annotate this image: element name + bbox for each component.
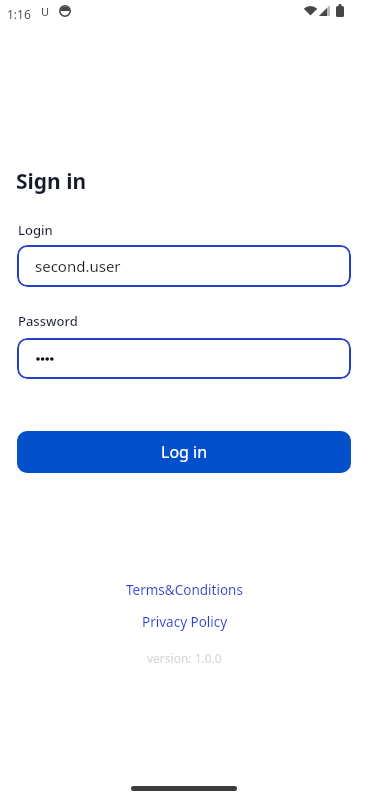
staticText: Login — [18, 221, 53, 239]
button[interactable]: Privacy Policy — [142, 613, 228, 631]
staticText: Password — [18, 312, 78, 330]
staticText: 1:16 — [7, 6, 31, 22]
staticText: second.user — [35, 256, 121, 276]
button[interactable]: Terms&Conditions — [126, 581, 243, 599]
button[interactable]: second.user — [17, 245, 351, 287]
staticText: Log in — [161, 441, 208, 463]
staticText: Sign in — [16, 167, 87, 196]
staticText: U — [41, 4, 50, 19]
button[interactable]: Log in — [17, 431, 351, 473]
button[interactable] — [17, 338, 351, 379]
staticText: version: 1.0.0 — [147, 650, 222, 666]
